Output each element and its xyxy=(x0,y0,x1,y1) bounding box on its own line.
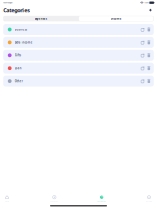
staticText: Expenses xyxy=(35,17,47,20)
button[interactable]: Statistics xyxy=(41,194,67,204)
staticText: Loan xyxy=(15,66,22,70)
staticText: Other xyxy=(15,79,23,83)
button[interactable]: Gifts xyxy=(3,50,154,61)
staticText: Categories xyxy=(3,7,30,14)
button[interactable]: Income xyxy=(78,16,154,21)
staticText: Statistics xyxy=(50,200,58,202)
staticText: Income xyxy=(111,17,122,20)
button[interactable]: Extra income xyxy=(3,37,154,48)
button[interactable]: Settings xyxy=(136,194,157,204)
staticText: Home xyxy=(5,200,9,202)
staticText: Extra income xyxy=(15,41,33,44)
button[interactable]: Add category xyxy=(147,7,153,13)
button[interactable]: Business xyxy=(3,24,154,35)
staticText: Business xyxy=(15,28,27,31)
staticText: 100% xyxy=(144,2,148,4)
staticText: Gifts xyxy=(15,53,21,57)
button[interactable]: Expenses xyxy=(3,16,78,21)
button[interactable]: Home xyxy=(0,194,20,204)
button[interactable]: Loan xyxy=(3,63,154,74)
staticText: 17:00 Thu 8 Jun xyxy=(2,2,12,4)
button[interactable]: Categories xyxy=(89,194,115,204)
staticText: Categories xyxy=(97,200,106,202)
button[interactable]: Other xyxy=(3,76,154,87)
staticText: Settings xyxy=(145,200,152,202)
